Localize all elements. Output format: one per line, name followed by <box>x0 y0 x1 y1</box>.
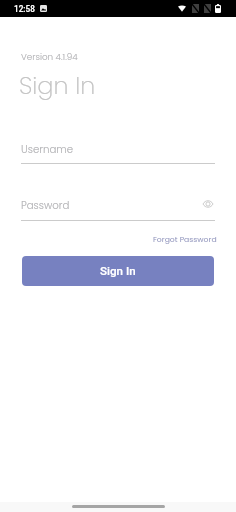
staticText: Sign In <box>19 69 96 103</box>
staticText: Forgot Password <box>153 234 217 245</box>
button[interactable]: Show password <box>194 190 221 217</box>
button[interactable]: Forgot Password <box>149 230 221 249</box>
button[interactable]: Sign In <box>22 256 214 286</box>
staticText: Sign In <box>100 264 136 278</box>
staticText: Password <box>21 198 70 212</box>
staticText: 12:58 <box>14 4 35 14</box>
staticText: Username <box>21 142 74 156</box>
staticText: Version 4.1.94 <box>21 51 78 63</box>
